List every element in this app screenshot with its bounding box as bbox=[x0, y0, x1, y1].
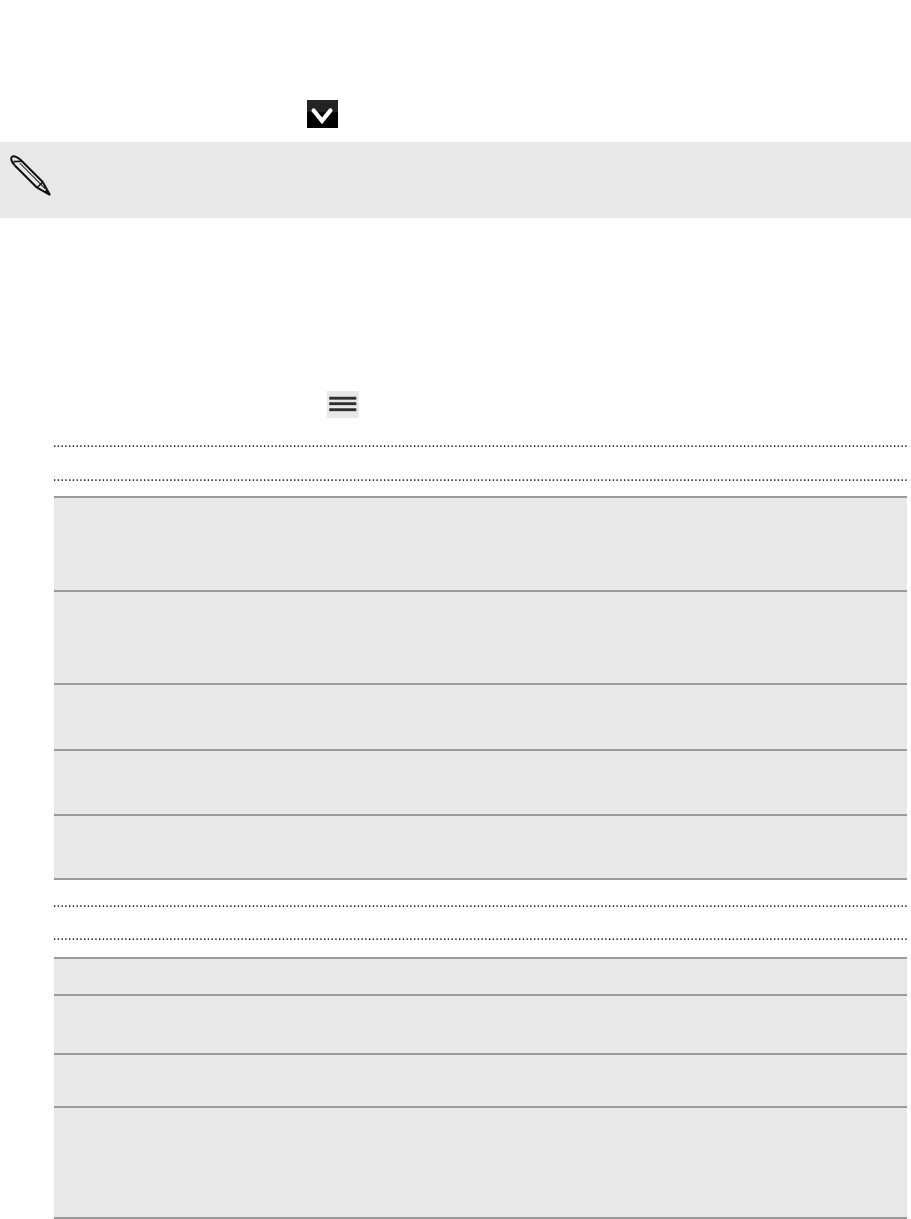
button[interactable]: Expand bbox=[307, 100, 338, 128]
button[interactable] bbox=[54, 958, 907, 995]
button[interactable] bbox=[54, 684, 907, 750]
button[interactable] bbox=[54, 1107, 907, 1218]
button[interactable] bbox=[54, 815, 907, 879]
button[interactable] bbox=[54, 995, 907, 1055]
button[interactable] bbox=[54, 1054, 907, 1107]
button[interactable]: Edit bbox=[8, 153, 55, 200]
button[interactable] bbox=[54, 591, 907, 685]
button[interactable]: Menu bbox=[327, 391, 359, 418]
button[interactable] bbox=[54, 750, 907, 815]
button[interactable] bbox=[54, 497, 907, 591]
